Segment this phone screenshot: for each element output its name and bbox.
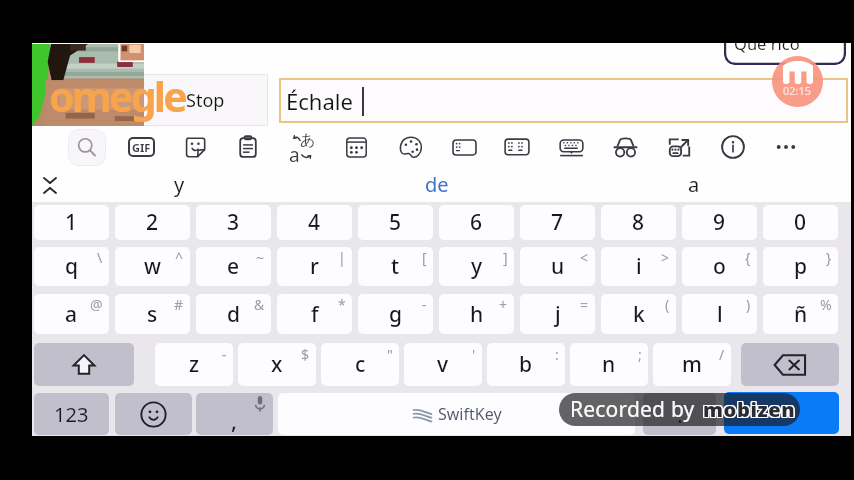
button[interactable]: t — [358, 247, 433, 286]
button[interactable]: Stop — [143, 74, 268, 126]
staticText: Que rico — [734, 43, 800, 54]
button[interactable]: Search — [66, 128, 108, 166]
button[interactable]: l — [682, 294, 757, 334]
button[interactable]: q — [34, 247, 109, 286]
button[interactable]: u — [520, 247, 595, 286]
button[interactable]: 5 — [358, 205, 433, 240]
button[interactable]: 1 — [34, 205, 109, 240]
staticText: y — [174, 171, 185, 198]
button[interactable]: o — [682, 247, 757, 286]
button[interactable]: One handed — [443, 128, 485, 166]
staticText: & — [254, 295, 265, 314]
staticText: $ — [301, 345, 310, 364]
button[interactable]: y — [119, 167, 239, 201]
staticText: m — [682, 350, 702, 379]
staticText: r — [310, 252, 319, 281]
staticText: 4 — [308, 208, 321, 237]
button[interactable]: m — [653, 343, 731, 386]
button[interactable]: Info — [712, 128, 754, 166]
button[interactable]: Floating keyboard — [550, 128, 592, 166]
staticText: a — [289, 142, 300, 168]
staticText: Stop — [186, 88, 225, 113]
button[interactable]: Mobizen recorder — [772, 56, 823, 107]
staticText: \ — [97, 248, 103, 267]
button[interactable]: 9 — [682, 205, 757, 240]
button[interactable]: h — [439, 294, 514, 334]
button[interactable]: k — [601, 294, 676, 334]
button[interactable]: j — [520, 294, 595, 334]
staticText: ' — [472, 345, 476, 364]
button[interactable]: n — [570, 343, 648, 386]
button[interactable]: s — [115, 294, 190, 334]
staticText: 2 — [146, 208, 159, 237]
staticText: p — [794, 252, 808, 281]
button[interactable]: x — [238, 343, 316, 386]
button[interactable]: 0 — [763, 205, 838, 240]
staticText: / — [719, 345, 725, 364]
button[interactable]: a — [634, 167, 754, 201]
button[interactable]: Space — [278, 393, 635, 435]
button[interactable]: f — [277, 294, 352, 334]
button[interactable]: GIF — [120, 128, 162, 166]
button[interactable]: Resize — [658, 128, 700, 166]
staticText: mobizen — [702, 396, 795, 423]
staticText: 0 — [794, 208, 807, 237]
button[interactable]: b — [487, 343, 565, 386]
button[interactable]: i — [601, 247, 676, 286]
button[interactable]: a — [34, 294, 109, 334]
button[interactable]: Stickers — [174, 128, 216, 166]
button[interactable]: r — [277, 247, 352, 286]
staticText: j — [555, 300, 561, 329]
button[interactable]: Emoji — [115, 393, 192, 435]
button[interactable]: More options — [765, 128, 807, 166]
button[interactable]: de — [377, 167, 497, 201]
button[interactable]: Switch to numbers — [34, 393, 109, 435]
button[interactable]: y — [439, 247, 514, 286]
button[interactable]: 3 — [196, 205, 271, 240]
button[interactable]: Clipboard — [227, 128, 269, 166]
staticText: ] — [503, 248, 508, 267]
button[interactable]: Period — [643, 393, 716, 435]
button[interactable]: Comma — [196, 393, 273, 435]
button[interactable]: 2 — [115, 205, 190, 240]
button[interactable]: w — [115, 247, 190, 286]
staticText: あ — [300, 131, 316, 150]
button[interactable]: e — [196, 247, 271, 286]
button[interactable]: z — [155, 343, 233, 386]
staticText: i — [636, 252, 642, 281]
button[interactable]: Enter — [724, 392, 839, 434]
button[interactable]: Incognito — [604, 128, 646, 166]
staticText: e — [227, 252, 240, 281]
button[interactable]: ñ — [763, 294, 838, 334]
button[interactable]: Collapse keyboard — [34, 167, 66, 203]
staticText: n — [602, 350, 616, 379]
button[interactable]: Keyboard layout — [496, 128, 538, 166]
button[interactable]: 4 — [277, 205, 352, 240]
button[interactable]: Que rico — [724, 43, 846, 65]
button[interactable]: v — [404, 343, 482, 386]
button[interactable]: g — [358, 294, 433, 334]
button[interactable]: c — [321, 343, 399, 386]
staticText: ñ — [794, 300, 808, 329]
staticText: h — [470, 300, 484, 329]
staticText: , — [231, 405, 238, 435]
staticText: SwiftKey — [438, 403, 502, 425]
staticText: " — [387, 345, 393, 364]
staticText: = — [580, 295, 589, 314]
button[interactable]: d — [196, 294, 271, 334]
button[interactable]: Shift — [34, 343, 134, 386]
button[interactable]: 6 — [439, 205, 514, 240]
staticText: b — [519, 350, 533, 379]
button[interactable]: 7 — [520, 205, 595, 240]
button[interactable]: Échale — [279, 78, 848, 123]
button[interactable]: 8 — [601, 205, 676, 240]
staticText: mobizen — [703, 396, 796, 423]
staticText: # — [174, 295, 184, 314]
button[interactable]: Backspace — [741, 343, 839, 386]
button[interactable]: Calendar — [335, 128, 377, 166]
button[interactable]: Translate — [281, 128, 323, 166]
staticText: . — [677, 399, 683, 429]
button[interactable]: p — [763, 247, 838, 286]
staticText: ~ — [256, 248, 265, 267]
button[interactable]: Themes — [389, 128, 431, 166]
